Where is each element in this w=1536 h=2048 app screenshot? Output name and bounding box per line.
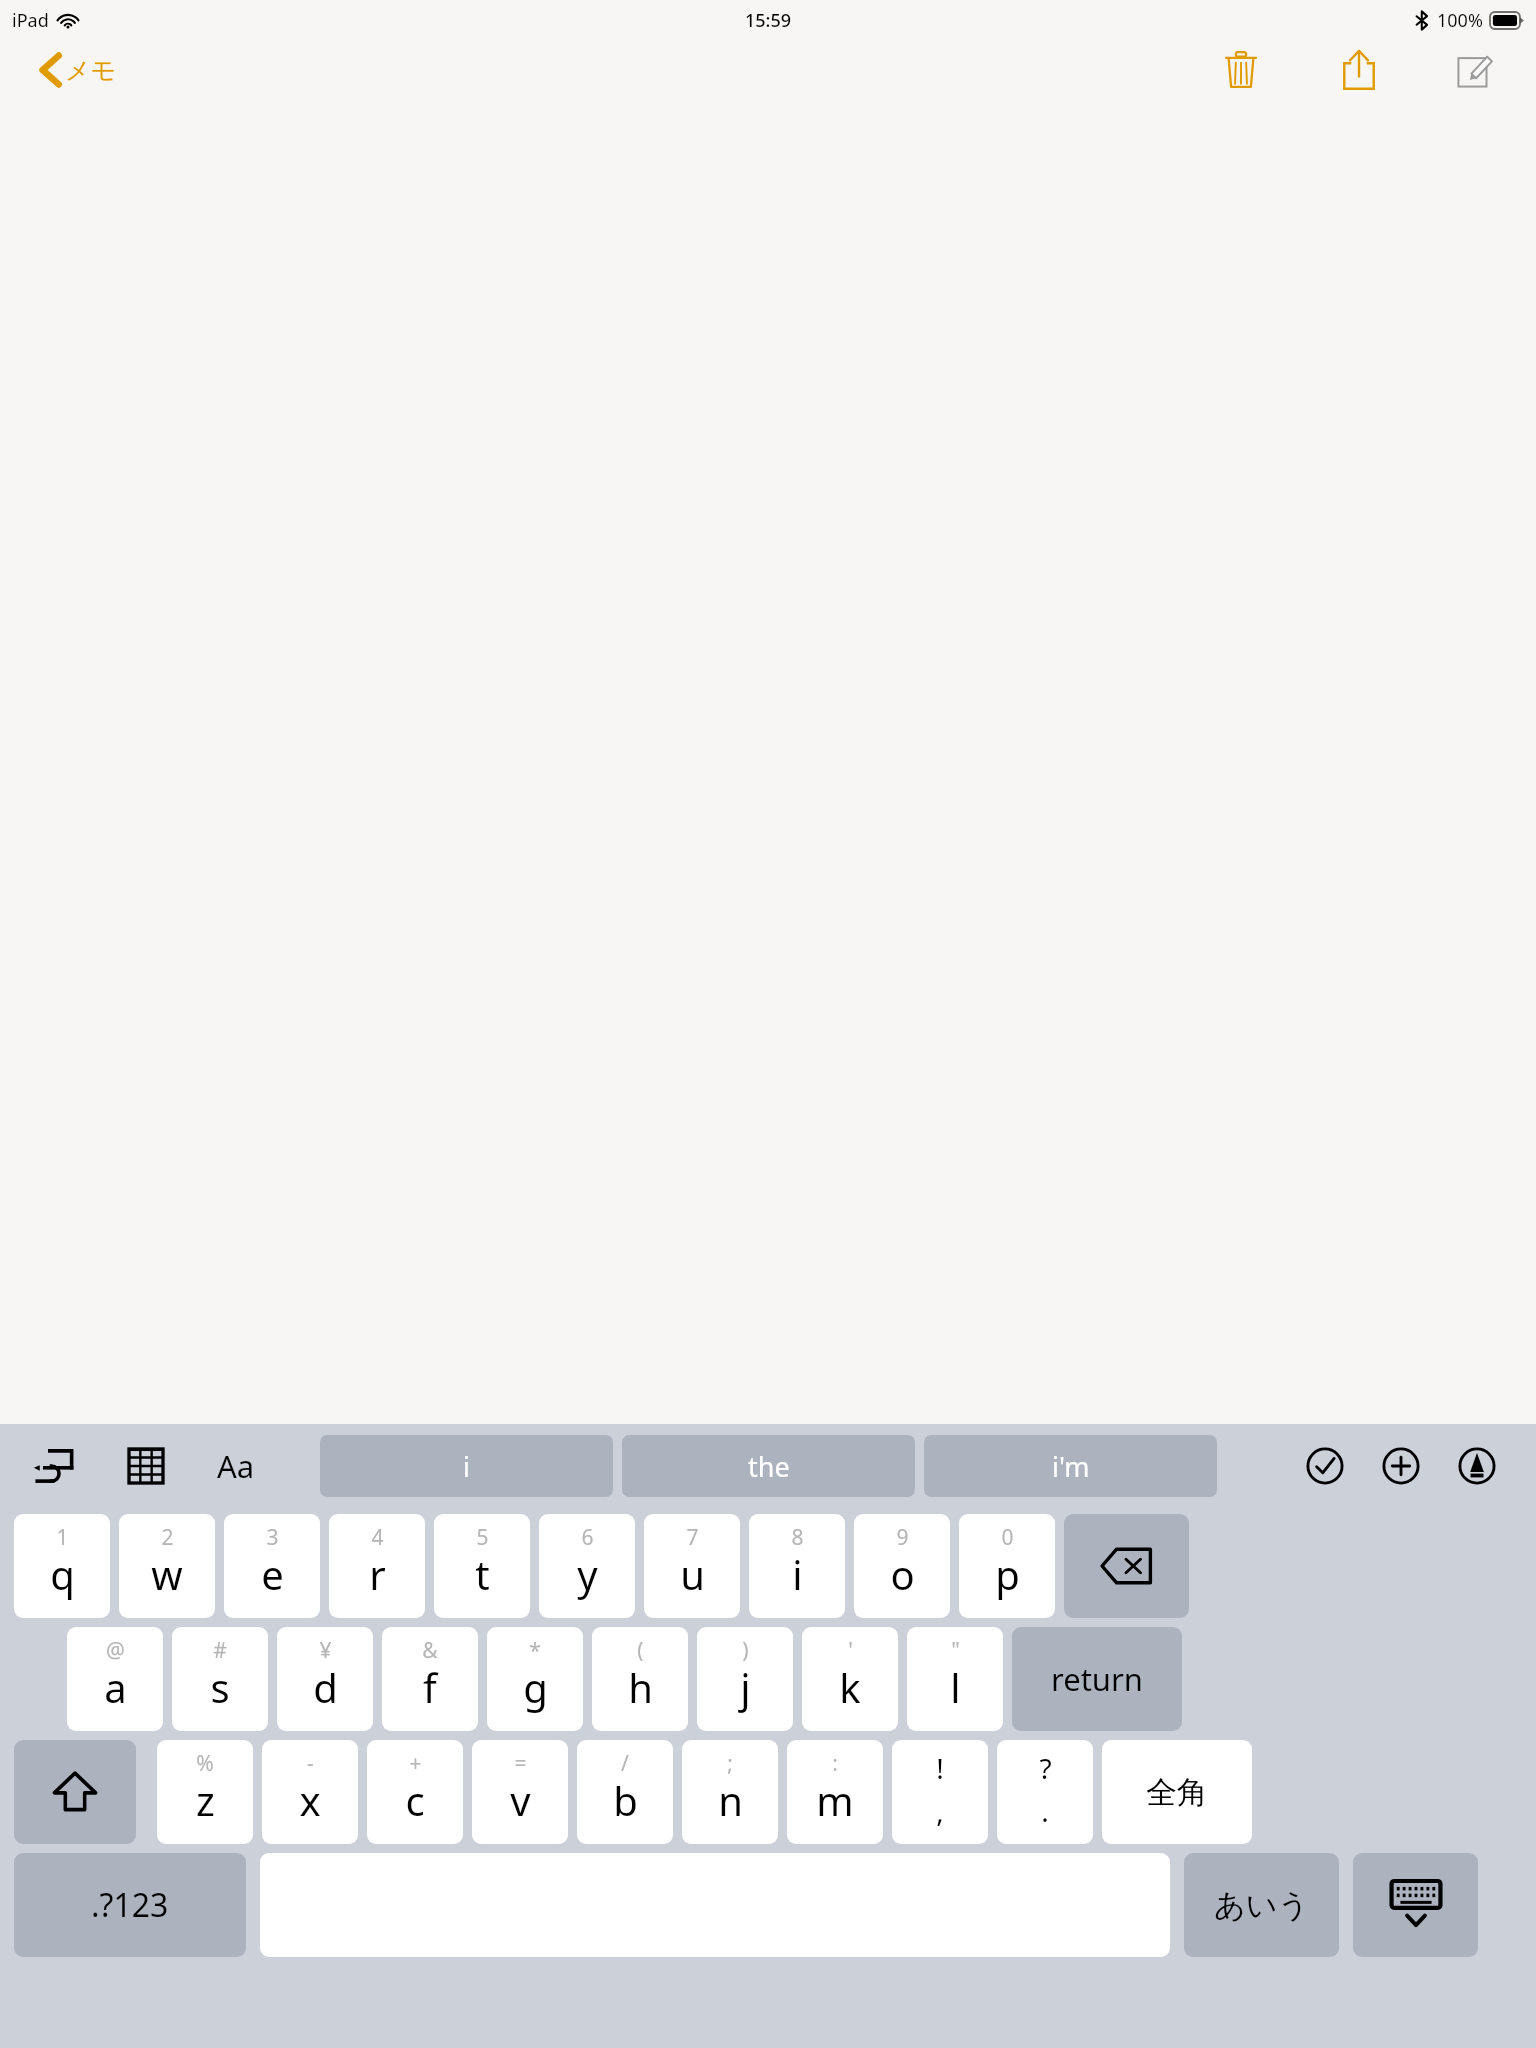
staticText: 5 bbox=[476, 1523, 489, 1552]
button[interactable]: .?123 bbox=[14, 1853, 246, 1957]
button[interactable]: the bbox=[622, 1435, 915, 1497]
staticText: ¥ bbox=[319, 1636, 332, 1665]
staticText: 9 bbox=[896, 1523, 909, 1552]
button[interactable]: ; bbox=[682, 1740, 778, 1844]
button[interactable]: return bbox=[1012, 1627, 1182, 1731]
staticText: a bbox=[104, 1660, 127, 1714]
button[interactable]: 2 bbox=[119, 1514, 215, 1618]
button[interactable]: Markup bbox=[1448, 1437, 1506, 1495]
staticText: q bbox=[50, 1547, 75, 1601]
staticText: i bbox=[463, 1448, 470, 1485]
button[interactable]: 4 bbox=[329, 1514, 425, 1618]
button[interactable]: * bbox=[487, 1627, 583, 1731]
staticText: ; bbox=[727, 1749, 733, 1778]
button[interactable]: Shift bbox=[14, 1740, 136, 1844]
staticText: 4 bbox=[371, 1523, 384, 1552]
staticText: " bbox=[951, 1636, 960, 1665]
button[interactable]: 3 bbox=[224, 1514, 320, 1618]
staticText: l bbox=[950, 1660, 961, 1714]
staticText: % bbox=[196, 1749, 214, 1778]
staticText: f bbox=[423, 1660, 437, 1714]
button[interactable]: メモ bbox=[40, 52, 117, 88]
button[interactable]: / bbox=[577, 1740, 673, 1844]
button[interactable]: Aa bbox=[204, 1434, 268, 1498]
staticText: h bbox=[628, 1660, 653, 1714]
button[interactable]: ( bbox=[592, 1627, 688, 1731]
button[interactable]: - bbox=[262, 1740, 358, 1844]
staticText: z bbox=[196, 1773, 215, 1827]
staticText: + bbox=[409, 1749, 422, 1778]
button[interactable]: 6 bbox=[539, 1514, 635, 1618]
staticText: .?123 bbox=[91, 1883, 169, 1927]
button[interactable]: あいう bbox=[1184, 1853, 1339, 1957]
staticText: m bbox=[816, 1773, 854, 1827]
staticText: e bbox=[261, 1547, 284, 1601]
button[interactable]: 5 bbox=[434, 1514, 530, 1618]
staticText: p bbox=[995, 1547, 1020, 1601]
button[interactable]: Share bbox=[1326, 40, 1392, 100]
staticText: w bbox=[151, 1547, 183, 1601]
staticText: 15:59 bbox=[745, 8, 792, 33]
staticText: g bbox=[523, 1660, 548, 1714]
button[interactable]: 全角 bbox=[1102, 1740, 1252, 1844]
button[interactable]: New Note bbox=[1442, 40, 1508, 100]
button[interactable]: Table bbox=[114, 1434, 178, 1498]
button[interactable]: 1 bbox=[14, 1514, 110, 1618]
staticText: r bbox=[369, 1547, 386, 1601]
button[interactable]: i'm bbox=[924, 1435, 1217, 1497]
button[interactable]: Delete bbox=[1208, 40, 1274, 100]
staticText: s bbox=[210, 1660, 230, 1714]
button[interactable]: + bbox=[367, 1740, 463, 1844]
button[interactable]: Insert bbox=[1372, 1437, 1430, 1495]
button[interactable]: " bbox=[907, 1627, 1003, 1731]
button[interactable]: ' bbox=[802, 1627, 898, 1731]
button[interactable]: = bbox=[472, 1740, 568, 1844]
staticText: d bbox=[313, 1660, 338, 1714]
button[interactable]: 8 bbox=[749, 1514, 845, 1618]
button[interactable]: Hide Keyboard bbox=[1353, 1853, 1478, 1957]
button[interactable]: : bbox=[787, 1740, 883, 1844]
staticText: ( bbox=[637, 1636, 644, 1665]
staticText: = bbox=[514, 1749, 527, 1778]
button[interactable]: ! bbox=[892, 1740, 988, 1844]
button[interactable]: 7 bbox=[644, 1514, 740, 1618]
button[interactable]: i bbox=[320, 1435, 613, 1497]
button[interactable]: ¥ bbox=[277, 1627, 373, 1731]
staticText: o bbox=[890, 1547, 915, 1601]
staticText: . bbox=[1041, 1792, 1049, 1830]
staticText: 8 bbox=[791, 1523, 804, 1552]
button[interactable]: Checklist bbox=[1296, 1437, 1354, 1495]
staticText: x bbox=[299, 1773, 321, 1827]
staticText: iPad bbox=[12, 8, 49, 33]
button[interactable]: Backspace bbox=[1064, 1514, 1189, 1618]
staticText: the bbox=[748, 1448, 790, 1485]
staticText: & bbox=[422, 1636, 438, 1665]
staticText: ' bbox=[848, 1636, 853, 1665]
staticText: 0 bbox=[1001, 1523, 1014, 1552]
button[interactable]: 0 bbox=[959, 1514, 1055, 1618]
staticText: ! bbox=[936, 1749, 944, 1787]
staticText: c bbox=[405, 1773, 425, 1827]
staticText: ? bbox=[1039, 1749, 1052, 1787]
button[interactable]: @ bbox=[67, 1627, 163, 1731]
staticText: * bbox=[529, 1636, 541, 1665]
button[interactable]: # bbox=[172, 1627, 268, 1731]
staticText: , bbox=[936, 1792, 944, 1830]
button[interactable]: ? bbox=[997, 1740, 1093, 1844]
staticText: u bbox=[680, 1547, 705, 1601]
button[interactable]: 9 bbox=[854, 1514, 950, 1618]
staticText: ) bbox=[742, 1636, 749, 1665]
staticText: v bbox=[510, 1773, 531, 1827]
button[interactable]: Undo bbox=[22, 1434, 86, 1498]
staticText: - bbox=[307, 1749, 314, 1778]
button[interactable]: & bbox=[382, 1627, 478, 1731]
staticText: @ bbox=[106, 1636, 125, 1665]
staticText: 6 bbox=[581, 1523, 594, 1552]
staticText: 全角 bbox=[1146, 1773, 1208, 1812]
staticText: y bbox=[577, 1547, 598, 1601]
button[interactable]: % bbox=[157, 1740, 253, 1844]
button[interactable]: ) bbox=[697, 1627, 793, 1731]
staticText: 2 bbox=[161, 1523, 174, 1552]
staticText: k bbox=[839, 1660, 861, 1714]
